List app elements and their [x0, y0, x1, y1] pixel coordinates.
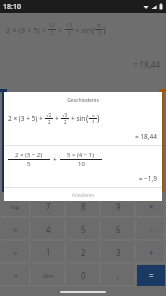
staticText: 7	[46, 201, 51, 212]
staticText: 5	[81, 224, 86, 235]
staticText: 0	[81, 270, 86, 281]
staticText: ×	[149, 201, 154, 212]
button[interactable]: 5	[67, 219, 100, 240]
button[interactable]: 8	[67, 196, 100, 217]
staticText: ,	[117, 270, 120, 281]
staticText: 10	[78, 160, 85, 168]
staticText: +	[58, 25, 63, 35]
staticText: = 18,44	[6, 59, 160, 70]
button[interactable]: ln	[1, 219, 30, 240]
staticText: √3	[62, 112, 68, 118]
button[interactable]: 9	[102, 196, 135, 217]
button[interactable]: Equals	[137, 265, 165, 286]
button[interactable]: 2 × (3 + 5) +	[4, 112, 162, 125]
button[interactable]: −	[137, 219, 165, 240]
staticText: + sin	[71, 114, 86, 123]
staticText: 6	[116, 224, 121, 235]
staticText: log	[11, 203, 20, 210]
staticText: = −1,9	[4, 174, 157, 183]
staticText: )	[103, 24, 106, 36]
staticText: 2	[68, 30, 71, 37]
staticText: 2 × (3 + 5) +	[8, 114, 43, 123]
staticText: 18:10	[3, 2, 21, 12]
button[interactable]: 1	[32, 242, 65, 263]
staticText: √2	[46, 112, 52, 118]
staticText: 2	[64, 119, 67, 125]
button[interactable]: 2	[67, 242, 100, 263]
staticText: +	[53, 155, 57, 164]
staticText: 9	[116, 201, 121, 212]
staticText: 3	[98, 30, 101, 37]
staticText: 2	[81, 247, 86, 258]
button[interactable]: 7	[32, 196, 65, 217]
staticText: +	[149, 247, 154, 258]
staticText: + sin	[75, 25, 92, 35]
staticText: √2	[49, 22, 56, 29]
staticText: 4	[46, 224, 51, 235]
staticText: 2	[48, 119, 51, 125]
button[interactable]: Ans	[32, 265, 65, 286]
staticText: 2 × (3 + 5) +	[6, 25, 46, 35]
staticText: ln	[13, 226, 18, 233]
staticText: )	[97, 113, 100, 124]
staticText: 3	[92, 119, 95, 124]
staticText: Geschiedenis	[4, 97, 162, 104]
staticText: =	[149, 270, 154, 281]
button[interactable]: 3	[102, 242, 135, 263]
staticText: 1	[46, 247, 51, 258]
staticText: Ans	[43, 272, 54, 280]
staticText: 5	[27, 160, 31, 168]
button[interactable]: 4	[32, 219, 65, 240]
staticText: −	[149, 224, 154, 235]
staticText: √3	[66, 22, 73, 29]
staticText: π	[92, 113, 95, 118]
staticText: (	[86, 113, 89, 124]
staticText: = 18,44	[4, 132, 157, 141]
staticText: π	[97, 22, 101, 29]
button[interactable]: log	[1, 196, 30, 217]
staticText: 3	[116, 247, 121, 258]
staticText: 8	[81, 201, 86, 212]
button[interactable]: 6	[102, 219, 135, 240]
staticText: π	[14, 272, 18, 279]
button[interactable]: 0	[67, 265, 100, 286]
staticText: (	[92, 24, 95, 36]
staticText: +	[55, 114, 59, 123]
staticText: e	[14, 249, 18, 256]
button[interactable]: 2 × (3 − 2)	[4, 151, 162, 168]
staticText: 2	[51, 30, 54, 37]
button[interactable]: +	[137, 242, 165, 263]
staticText: 5 × (4 − 1)	[67, 151, 95, 159]
button[interactable]: ×	[137, 196, 165, 217]
staticText: 2 × (3 − 2)	[15, 151, 43, 159]
staticText: Annuleren	[72, 192, 95, 198]
button[interactable]: Annuleren	[4, 188, 162, 201]
